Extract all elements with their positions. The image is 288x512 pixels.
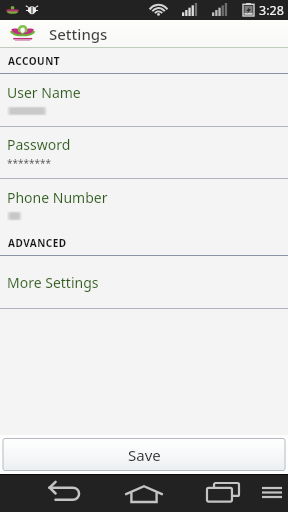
- staticText: Phone Number: [7, 188, 108, 207]
- button[interactable]: Phone Number: [0, 179, 288, 230]
- button[interactable]: Recent apps: [194, 474, 252, 512]
- staticText: Save: [128, 445, 161, 465]
- staticText: More Settings: [7, 273, 99, 292]
- staticText: ADVANCED: [8, 236, 67, 250]
- staticText: Password: [7, 135, 71, 154]
- staticText: User Name: [7, 83, 81, 102]
- button[interactable]: Save: [3, 439, 285, 471]
- button[interactable]: More Settings: [0, 256, 288, 308]
- staticText: ACCOUNT: [8, 54, 61, 68]
- staticText: Settings: [49, 24, 108, 44]
- staticText: 3:28: [259, 2, 284, 19]
- button[interactable]: User Name: [0, 74, 288, 126]
- button[interactable]: Home: [108, 474, 180, 512]
- button[interactable]: Back: [0, 474, 100, 512]
- button[interactable]: Password: [0, 127, 288, 178]
- button[interactable]: Menu: [250, 474, 288, 512]
- staticText: ********: [7, 156, 52, 170]
